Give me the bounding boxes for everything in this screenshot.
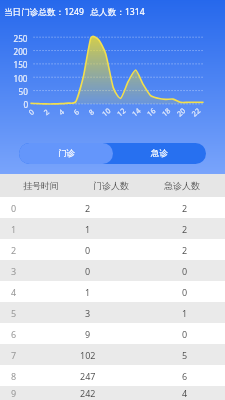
staticText: 7: [11, 349, 17, 361]
staticText: 0: [85, 244, 91, 256]
staticText: 1: [11, 223, 17, 235]
staticText: 8: [11, 370, 17, 382]
staticText: 急诊人数: [164, 180, 200, 191]
staticText: 3: [11, 265, 17, 277]
button[interactable]: 0: [0, 197, 225, 218]
button[interactable]: 5: [0, 302, 225, 323]
staticText: 6: [11, 328, 17, 340]
staticText: 当日门诊总数：1249 总人数：1314: [4, 6, 145, 18]
staticText: 4: [11, 286, 17, 298]
button[interactable]: 8: [0, 365, 225, 386]
staticText: 挂号时间: [23, 180, 59, 191]
staticText: 门诊人数: [93, 180, 129, 191]
staticText: 2: [182, 223, 188, 235]
staticText: 2: [85, 202, 91, 214]
staticText: 0: [85, 265, 91, 277]
staticText: 0: [11, 202, 17, 214]
button[interactable]: 3: [0, 260, 225, 281]
staticText: 9: [11, 387, 17, 399]
staticText: 5: [11, 307, 17, 319]
staticText: 2: [182, 244, 188, 256]
staticText: 0: [182, 328, 188, 340]
staticText: 247: [80, 370, 96, 382]
staticText: 2: [182, 202, 188, 214]
staticText: 102: [80, 349, 96, 361]
button[interactable]: 门诊: [19, 143, 113, 164]
staticText: 1: [85, 286, 91, 298]
staticText: 1: [182, 307, 188, 319]
staticText: 0: [182, 265, 188, 277]
staticText: 1: [85, 223, 91, 235]
staticText: 6: [182, 370, 188, 382]
staticText: 门诊: [58, 148, 75, 159]
staticText: 5: [182, 349, 188, 361]
button[interactable]: 急诊: [113, 143, 206, 164]
button[interactable]: 7: [0, 344, 225, 365]
staticText: 2: [11, 244, 17, 256]
staticText: 0: [182, 286, 188, 298]
button[interactable]: 2: [0, 239, 225, 260]
staticText: 4: [182, 387, 188, 399]
staticText: 急诊: [151, 148, 168, 159]
staticText: 242: [80, 387, 96, 399]
button[interactable]: 1: [0, 218, 225, 239]
staticText: 3: [85, 307, 91, 319]
button[interactable]: 4: [0, 281, 225, 302]
staticText: 9: [85, 328, 91, 340]
button[interactable]: 9: [0, 386, 225, 400]
button[interactable]: 6: [0, 323, 225, 344]
